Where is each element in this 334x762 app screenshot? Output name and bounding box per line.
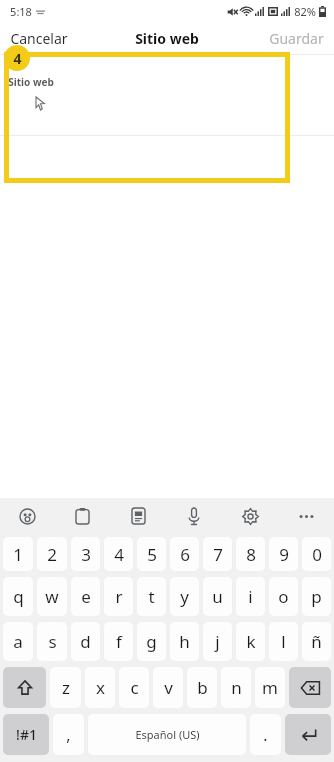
staticText: s	[48, 630, 57, 653]
staticText: e	[81, 585, 91, 608]
button[interactable]: e	[71, 577, 100, 616]
staticText: c	[130, 676, 139, 699]
staticText: v	[164, 676, 173, 699]
button[interactable]: a	[3, 622, 33, 661]
staticText: !#1	[16, 725, 37, 744]
staticText: g	[146, 630, 157, 653]
button[interactable]: 5	[137, 537, 166, 571]
button[interactable]: d	[71, 622, 100, 661]
staticText: n	[231, 676, 242, 699]
button[interactable]: k	[236, 622, 265, 661]
button[interactable]: Español (US)	[88, 714, 246, 755]
button[interactable]: 3	[71, 537, 100, 571]
button[interactable]: q	[3, 577, 33, 616]
staticText: u	[212, 585, 223, 608]
staticText: w	[45, 585, 59, 608]
staticText: t	[148, 585, 155, 608]
button[interactable]: j	[203, 622, 232, 661]
staticText: 4	[13, 49, 22, 68]
button[interactable]: 2	[37, 537, 67, 571]
staticText: h	[179, 630, 190, 653]
button[interactable]: Cancelar	[0, 25, 78, 52]
staticText: j	[215, 630, 220, 653]
button[interactable]: o	[269, 577, 298, 616]
staticText: Español (US)	[135, 727, 200, 742]
staticText: Sitio web	[8, 75, 54, 89]
staticText: i	[248, 585, 253, 608]
button[interactable]: u	[203, 577, 232, 616]
staticText: 2	[47, 543, 57, 566]
button[interactable]: Sitio web	[0, 55, 334, 135]
staticText: a	[13, 630, 23, 653]
staticText: m	[262, 676, 278, 699]
button[interactable]: m	[255, 667, 285, 708]
button[interactable]: c	[119, 667, 149, 708]
button[interactable]: i	[236, 577, 265, 616]
button[interactable]: x	[85, 667, 115, 708]
button[interactable]: 7	[203, 537, 232, 571]
button[interactable]: 8	[236, 537, 265, 571]
staticText: 5	[147, 543, 157, 566]
button[interactable]: Guardar	[259, 25, 334, 52]
staticText: Sitio web	[135, 29, 199, 48]
button[interactable]: Settings	[222, 498, 278, 534]
staticText: ñ	[311, 630, 322, 653]
button[interactable]: ñ	[302, 622, 331, 661]
button[interactable]: Voice input	[166, 498, 222, 534]
staticText: d	[80, 630, 91, 653]
button[interactable]: n	[221, 667, 251, 708]
button[interactable]: Clipboard	[55, 498, 110, 534]
button[interactable]: y	[170, 577, 199, 616]
button[interactable]: Shift	[3, 667, 46, 708]
staticText: ,	[66, 724, 71, 746]
button[interactable]: g	[137, 622, 166, 661]
staticText: 5:18	[10, 4, 32, 19]
button[interactable]: !#1	[3, 714, 49, 755]
staticText: 9	[279, 543, 289, 566]
staticText: Cancelar	[10, 29, 68, 48]
button[interactable]: l	[269, 622, 298, 661]
staticText: k	[246, 630, 256, 653]
button[interactable]: b	[187, 667, 217, 708]
button[interactable]: 4	[104, 537, 133, 571]
staticText: f	[116, 630, 122, 653]
button[interactable]: Text stickers	[110, 498, 166, 534]
staticText: 4	[114, 543, 124, 566]
button[interactable]: 0	[302, 537, 331, 571]
button[interactable]: s	[37, 622, 67, 661]
staticText: 0	[312, 543, 322, 566]
staticText: r	[115, 585, 123, 608]
staticText: l	[281, 630, 286, 653]
staticText: .	[263, 724, 268, 746]
button[interactable]: 1	[3, 537, 33, 571]
button[interactable]: More options	[278, 498, 334, 534]
staticText: 1	[13, 543, 23, 566]
staticText: 8	[246, 543, 256, 566]
button[interactable]: Emoji	[0, 498, 55, 534]
staticText: y	[180, 585, 189, 608]
staticText: b	[197, 676, 208, 699]
button[interactable]: v	[153, 667, 183, 708]
button[interactable]: .	[250, 714, 281, 755]
staticText: Guardar	[269, 29, 324, 48]
button[interactable]: Backspace	[289, 667, 331, 708]
staticText: 6	[180, 543, 190, 566]
button[interactable]: Enter	[285, 714, 331, 755]
staticText: 82%	[294, 4, 316, 19]
button[interactable]: f	[104, 622, 133, 661]
button[interactable]: w	[37, 577, 67, 616]
staticText: q	[13, 585, 24, 608]
staticText: 7	[213, 543, 223, 566]
button[interactable]: h	[170, 622, 199, 661]
button[interactable]: 6	[170, 537, 199, 571]
staticText: 3	[81, 543, 91, 566]
staticText: z	[62, 676, 70, 699]
staticText: x	[96, 676, 105, 699]
button[interactable]: z	[50, 667, 81, 708]
button[interactable]: r	[104, 577, 133, 616]
staticText: p	[311, 585, 322, 608]
button[interactable]: p	[302, 577, 331, 616]
button[interactable]: t	[137, 577, 166, 616]
button[interactable]: ,	[53, 714, 84, 755]
button[interactable]: 9	[269, 537, 298, 571]
